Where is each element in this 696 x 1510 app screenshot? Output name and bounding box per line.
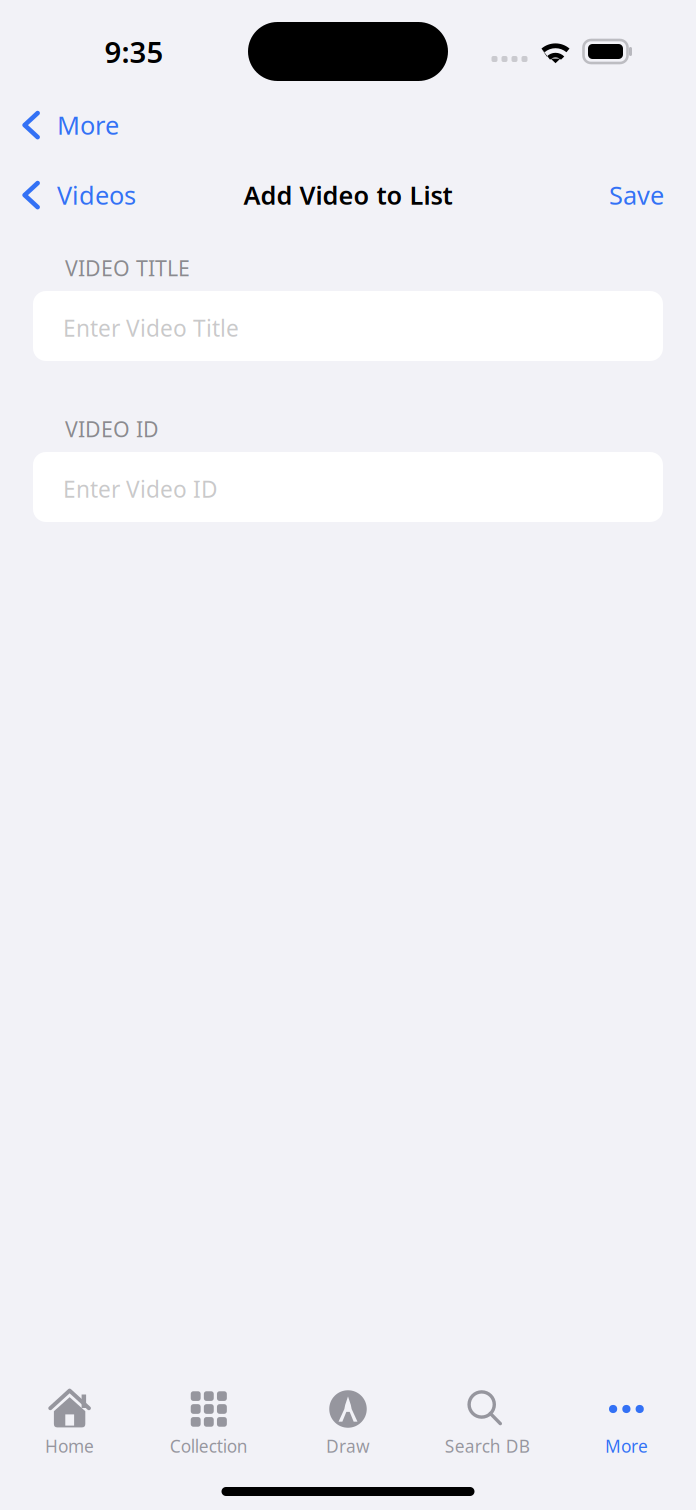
button[interactable]: More	[0, 103, 696, 147]
staticText: Save	[609, 178, 664, 212]
staticText: Videos	[57, 178, 136, 212]
staticText: VIDEO ID	[65, 415, 159, 443]
button[interactable]: Search DB	[418, 1389, 557, 1457]
staticText: Collection	[170, 1434, 248, 1457]
button[interactable]: Enter Video Title	[33, 291, 663, 361]
staticText: Search DB	[445, 1434, 530, 1457]
staticText: VIDEO TITLE	[65, 254, 190, 282]
staticText: Home	[45, 1434, 94, 1457]
button[interactable]: Draw	[278, 1389, 418, 1457]
staticText: More	[57, 108, 119, 142]
button[interactable]: Enter Video ID	[33, 452, 663, 522]
staticText: Enter Video Title	[63, 313, 239, 343]
staticText: Add Video to List	[243, 178, 452, 212]
button[interactable]: Home	[0, 1389, 139, 1457]
button[interactable]: Collection	[139, 1389, 278, 1457]
staticText: More	[605, 1434, 648, 1457]
button[interactable]: More	[557, 1389, 696, 1457]
staticText: 9:35	[104, 32, 163, 71]
button[interactable]: Videos	[0, 156, 136, 234]
button[interactable]: Save	[609, 156, 696, 234]
staticText: Draw	[326, 1434, 370, 1457]
staticText: Enter Video ID	[63, 474, 218, 504]
